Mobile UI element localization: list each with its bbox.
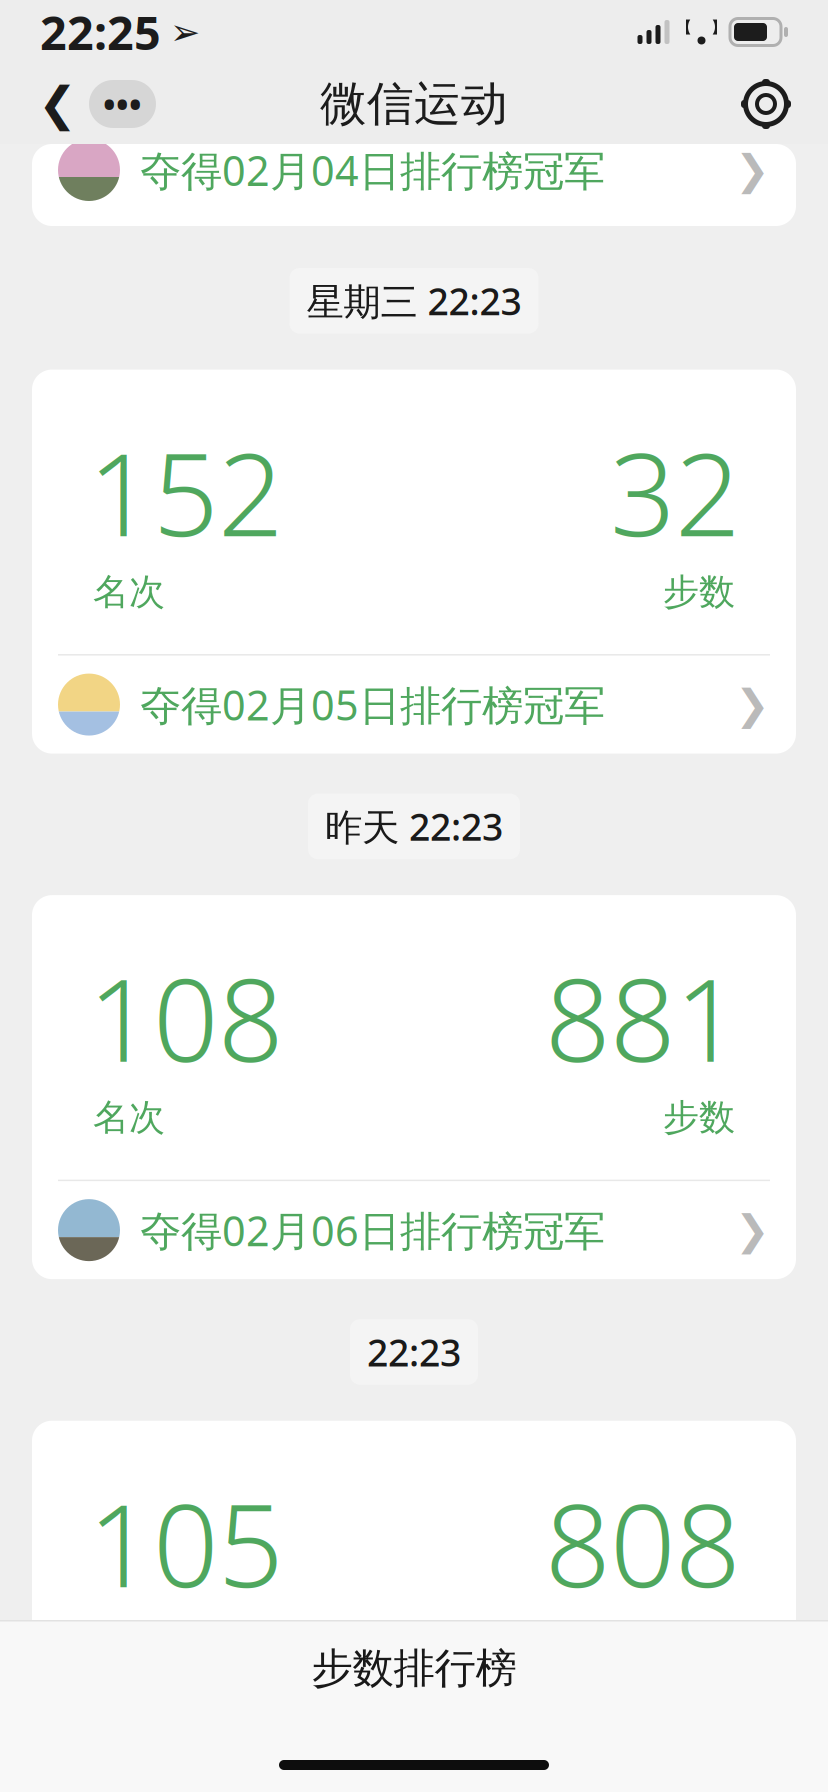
button[interactable]: 步数排行榜 xyxy=(0,1621,828,1715)
staticText: ❯ xyxy=(735,1207,770,1254)
staticText: ❯ xyxy=(735,146,770,193)
staticText: 881 xyxy=(545,941,740,1093)
staticText: 步数 xyxy=(663,570,735,614)
staticText: 星期三 22:23 xyxy=(306,276,521,326)
staticText: ❮ xyxy=(38,77,77,130)
staticText: 步数 xyxy=(663,1095,735,1140)
staticText: ➢ xyxy=(170,12,200,52)
button[interactable]: 夺得02月07日排行榜冠军 xyxy=(32,1707,796,1792)
staticText: 108 xyxy=(88,941,283,1093)
staticText: 105 xyxy=(88,1467,283,1619)
staticText: 夺得02月06日排行榜冠军 xyxy=(140,1203,605,1258)
button[interactable]: 夺得02月04日排行榜冠军 xyxy=(32,144,796,226)
staticText: 夺得02月07日排行榜冠军 xyxy=(140,1728,605,1783)
button[interactable]: 夺得02月05日排行榜冠军 xyxy=(32,656,796,754)
staticText: ❯ xyxy=(735,681,770,728)
staticText: 夺得02月04日排行榜冠军 xyxy=(140,143,605,197)
staticText: 名次 xyxy=(93,570,165,614)
staticText: 808 xyxy=(545,1467,740,1619)
staticText: ••• xyxy=(103,82,142,126)
staticText: 名次 xyxy=(93,1095,165,1140)
staticText: 32 xyxy=(610,416,740,568)
staticText: 22:23 xyxy=(367,1327,461,1377)
staticText: 夺得02月05日排行榜冠军 xyxy=(140,677,605,732)
button[interactable]: 夺得02月06日排行榜冠军 xyxy=(32,1181,796,1279)
button[interactable]: Settings xyxy=(736,74,796,134)
staticText: 微信运动 xyxy=(320,75,508,133)
staticText: 昨天 22:23 xyxy=(325,802,503,851)
staticText: 22:25 xyxy=(40,1,161,63)
staticText: 152 xyxy=(88,416,283,568)
button[interactable]: Back xyxy=(32,67,162,141)
staticText: 步数排行榜 xyxy=(311,1643,516,1694)
